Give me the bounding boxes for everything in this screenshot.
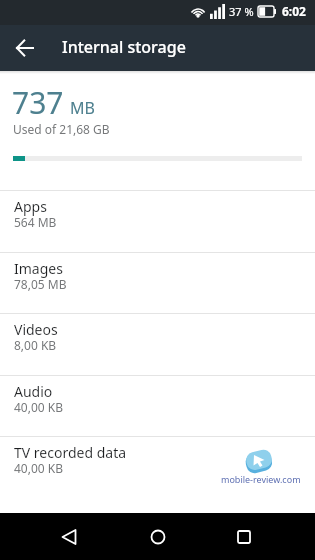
- staticText: MB: [70, 97, 95, 119]
- button[interactable]: Images: [0, 252, 315, 314]
- staticText: 8,00 KB: [14, 337, 57, 353]
- staticText: Apps: [14, 197, 47, 216]
- staticText: Images: [14, 259, 63, 278]
- button[interactable]: Videos: [0, 313, 315, 375]
- staticText: Internal storage: [62, 36, 186, 58]
- staticText: Used of 21,68 GB: [13, 121, 110, 137]
- button[interactable]: [46, 513, 91, 560]
- staticText: 78,05 MB: [14, 276, 67, 292]
- staticText: Videos: [14, 320, 58, 339]
- staticText: TV recorded data: [14, 443, 127, 462]
- staticText: 6:02: [282, 3, 306, 19]
- staticText: mobile-review.com: [221, 473, 301, 485]
- staticText: 40,00 KB: [14, 460, 64, 476]
- button[interactable]: Apps: [0, 190, 315, 252]
- button[interactable]: [221, 513, 266, 560]
- staticText: Audio: [14, 382, 53, 401]
- button[interactable]: TV recorded data: [0, 436, 315, 498]
- staticText: 40,00 KB: [14, 399, 64, 415]
- staticText: 737: [12, 82, 64, 123]
- staticText: 37 %: [229, 4, 254, 19]
- button[interactable]: [0, 25, 46, 71]
- staticText: 564 MB: [14, 214, 57, 230]
- button[interactable]: [135, 513, 180, 560]
- button[interactable]: Audio: [0, 375, 315, 437]
